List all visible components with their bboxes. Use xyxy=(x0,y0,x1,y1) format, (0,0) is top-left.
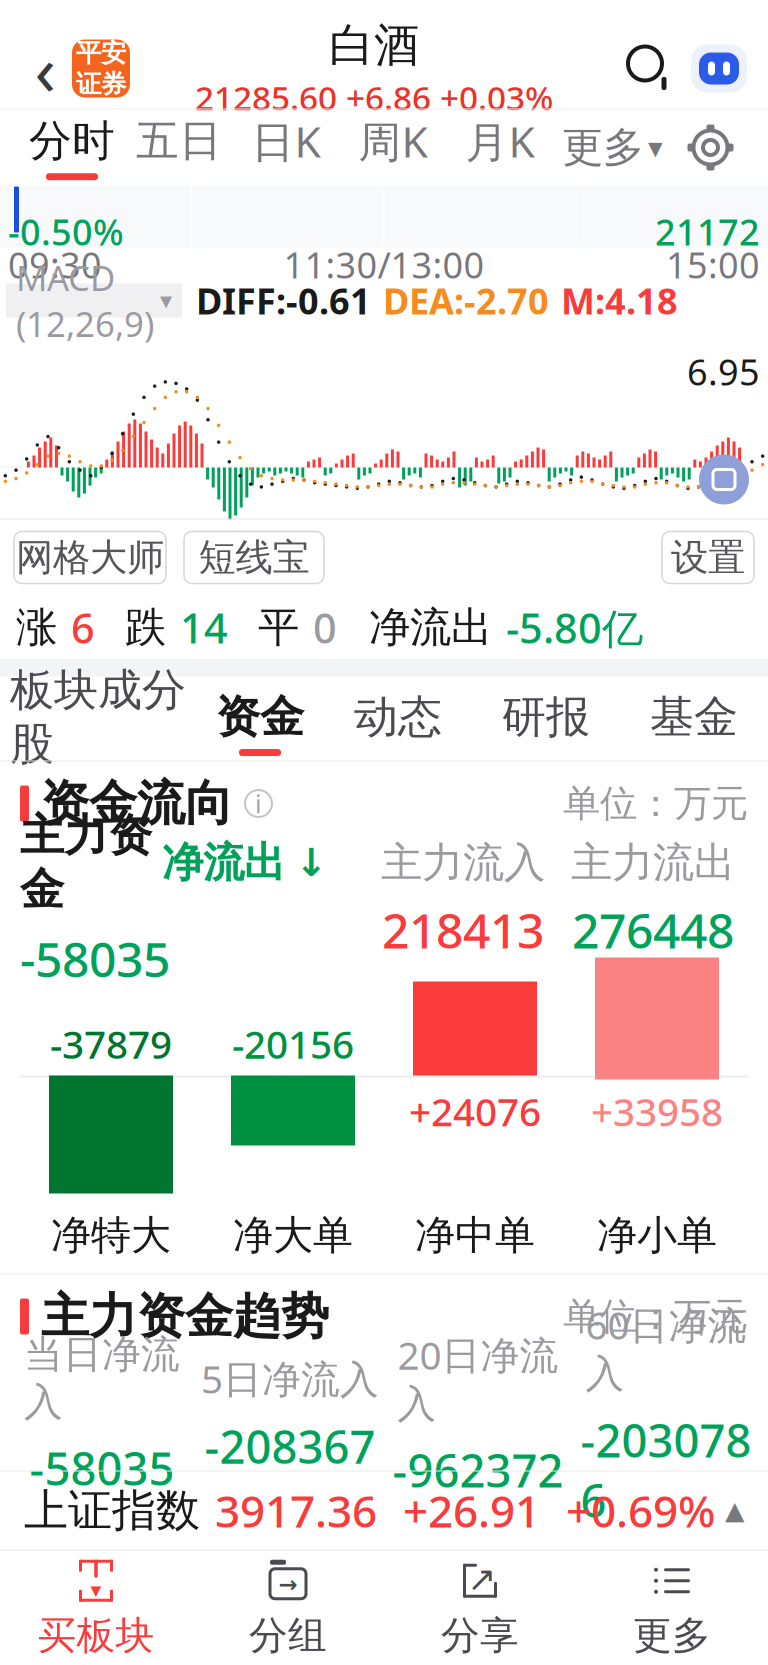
staticText: -0.50% xyxy=(8,208,124,255)
staticText: -2030786 xyxy=(580,1410,751,1530)
button[interactable]: 短线宝 xyxy=(184,531,324,583)
staticText: 更多 xyxy=(562,122,644,173)
button[interactable]: 周K xyxy=(339,109,446,185)
staticText: 涨 xyxy=(16,602,57,653)
staticText: +33958 xyxy=(591,1085,723,1137)
staticText: ↓ xyxy=(295,841,327,885)
button[interactable]: 上证指数 xyxy=(0,1471,768,1549)
staticText: 净特大 xyxy=(51,1211,171,1260)
staticText: 分组 xyxy=(249,1612,327,1659)
button[interactable]: 设置 xyxy=(671,109,749,185)
staticText: 设置 xyxy=(671,535,745,580)
staticText: 6.95 xyxy=(687,348,760,395)
staticText: ▾ xyxy=(648,131,663,164)
staticText: 276448 xyxy=(572,898,734,962)
staticText: +24076 xyxy=(409,1085,541,1137)
staticText: 净流出 xyxy=(162,837,285,888)
staticText: +26.91 xyxy=(403,1481,540,1540)
staticText: ▲ xyxy=(725,1496,744,1525)
staticText: 主力流出 xyxy=(571,837,735,888)
button[interactable]: 智能助手 xyxy=(688,37,750,99)
staticText: -58035 xyxy=(20,927,170,990)
button[interactable]: 展开 xyxy=(696,451,752,507)
staticText: 资金流向 xyxy=(41,774,233,833)
button[interactable]: 平安证券 xyxy=(72,39,130,97)
button[interactable]: 设置 xyxy=(662,531,754,583)
button[interactable]: 日K xyxy=(232,109,339,185)
staticText: 板块成分股 xyxy=(10,663,186,771)
staticText: ‹ xyxy=(34,22,55,115)
staticText: 当日净流入 xyxy=(24,1331,180,1426)
staticText: 网格大师 xyxy=(16,535,164,580)
staticText: 分享 xyxy=(441,1612,519,1659)
button[interactable]: 研报 xyxy=(472,676,620,760)
staticText: 上证指数 xyxy=(24,1483,200,1537)
staticText: 主力资金 xyxy=(20,809,152,917)
staticText: 跌 xyxy=(125,602,166,653)
staticText: -20156 xyxy=(232,1018,354,1069)
staticText: 21285.60 +6.86 +0.03% xyxy=(195,75,553,119)
staticText: ▾ xyxy=(160,287,172,314)
button[interactable]: 月K xyxy=(446,109,553,185)
staticText: 20日净流入 xyxy=(397,1329,558,1428)
button[interactable]: 五日 xyxy=(125,109,232,185)
button[interactable]: 板块成分股 xyxy=(0,676,196,760)
staticText: 短线宝 xyxy=(198,535,309,580)
staticText: 主力资金趋势 xyxy=(41,1287,329,1346)
staticText: 单位：万元 xyxy=(563,1294,748,1339)
button[interactable]: 返回 xyxy=(18,32,72,104)
staticText: DEA:-2.70 xyxy=(383,277,549,324)
button[interactable]: 搜索 xyxy=(618,36,682,100)
button[interactable]: 基金 xyxy=(620,676,768,760)
staticText: 主力流入 xyxy=(381,837,545,888)
staticText: -208367 xyxy=(204,1416,375,1476)
staticText: 分时 xyxy=(29,115,115,167)
button[interactable]: → xyxy=(192,1550,384,1665)
staticText: i xyxy=(255,787,262,820)
staticText: 218413 xyxy=(382,898,544,962)
staticText: 基金 xyxy=(650,690,738,744)
staticText: 单位：万元 xyxy=(563,781,748,826)
staticText: 月K xyxy=(465,113,534,169)
staticText: 60日净流入 xyxy=(585,1299,746,1398)
button[interactable]: 网格大师 xyxy=(14,531,166,583)
staticText: 5日净流入 xyxy=(201,1353,379,1404)
button[interactable]: 动态 xyxy=(324,676,472,760)
staticText: 14 xyxy=(180,600,228,655)
staticText: 平安 xyxy=(76,37,126,68)
staticText: MACD (12,26,9) xyxy=(16,254,154,347)
staticText: 证券 xyxy=(76,68,126,100)
staticText: -962372 xyxy=(392,1440,563,1500)
staticText: DIFF:-0.61 xyxy=(196,277,371,324)
staticText: -37879 xyxy=(50,1018,172,1069)
staticText: -5.80亿 xyxy=(506,600,643,655)
staticText: 研报 xyxy=(502,690,590,744)
button[interactable]: 更多 xyxy=(553,109,671,185)
staticText: 21172 xyxy=(655,208,760,255)
staticText: 净流出 xyxy=(369,602,492,653)
button[interactable]: ▾ xyxy=(0,1550,192,1665)
staticText: 3917.36 xyxy=(215,1481,377,1540)
button[interactable]: 资金 xyxy=(196,676,324,760)
staticText: 0 xyxy=(313,600,337,655)
staticText: 09:30 xyxy=(8,241,102,288)
staticText: 资金 xyxy=(216,690,304,744)
staticText: 白酒 xyxy=(329,17,419,73)
staticText: 6 xyxy=(71,600,95,655)
staticText: 平 xyxy=(258,602,299,653)
button[interactable]: 更多 xyxy=(576,1550,768,1665)
staticText: 买板块 xyxy=(37,1612,154,1659)
staticText: +0.69% xyxy=(566,1481,715,1540)
staticText: 净中单 xyxy=(415,1211,535,1260)
staticText: 日K xyxy=(251,113,320,169)
staticText: -58035 xyxy=(29,1438,174,1498)
button[interactable]: 分时 xyxy=(18,109,125,185)
staticText: 净大单 xyxy=(233,1211,353,1260)
staticText: M:4.18 xyxy=(561,277,678,324)
button[interactable]: ↗ xyxy=(384,1550,576,1665)
staticText: 15:00 xyxy=(666,241,760,288)
staticText: ↗ xyxy=(467,1559,496,1598)
staticText: 动态 xyxy=(354,690,442,744)
